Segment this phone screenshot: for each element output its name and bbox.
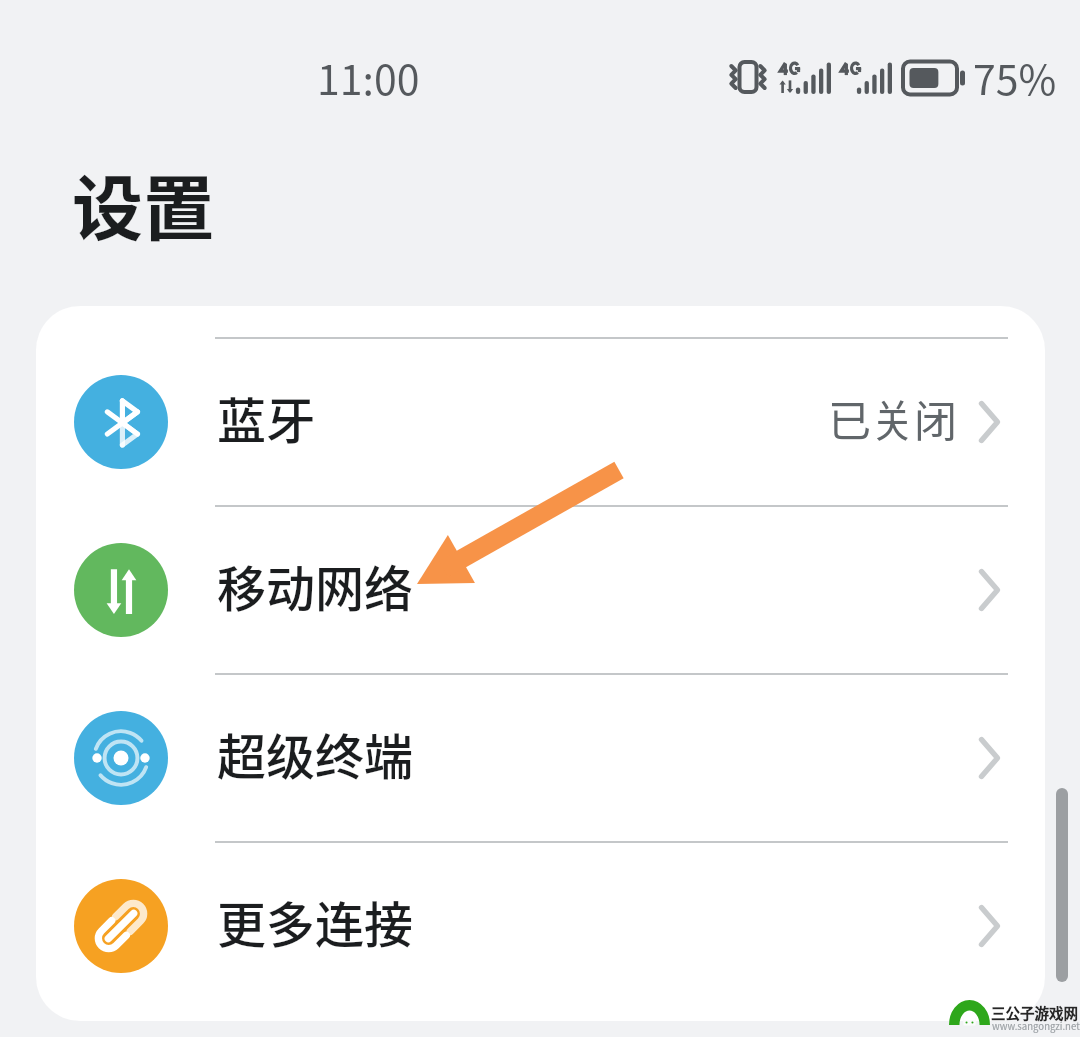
- other: 蓝牙: [74, 375, 168, 469]
- button[interactable]: 更多连接: [36, 842, 1045, 1010]
- button[interactable]: 蓝牙: [36, 338, 1045, 506]
- staticText: 已关闭: [828, 387, 957, 449]
- staticText: www.sangongzi.net: [992, 1019, 1080, 1033]
- staticText: 11:00: [317, 47, 420, 106]
- other: 移动网络: [74, 543, 168, 637]
- staticText: 蓝牙: [217, 382, 316, 453]
- staticText: 75%: [973, 47, 1057, 106]
- staticText: 三公子游戏网: [991, 1002, 1078, 1023]
- staticText: 超级终端: [217, 718, 414, 789]
- button[interactable]: 超级终端: [36, 674, 1045, 842]
- other: 更多连接: [74, 879, 168, 973]
- staticText: 设置: [72, 152, 215, 255]
- staticText: 移动网络: [217, 550, 414, 621]
- button[interactable]: 移动网络: [36, 506, 1045, 674]
- other: 超级终端: [74, 711, 168, 805]
- staticText: 更多连接: [217, 886, 414, 957]
